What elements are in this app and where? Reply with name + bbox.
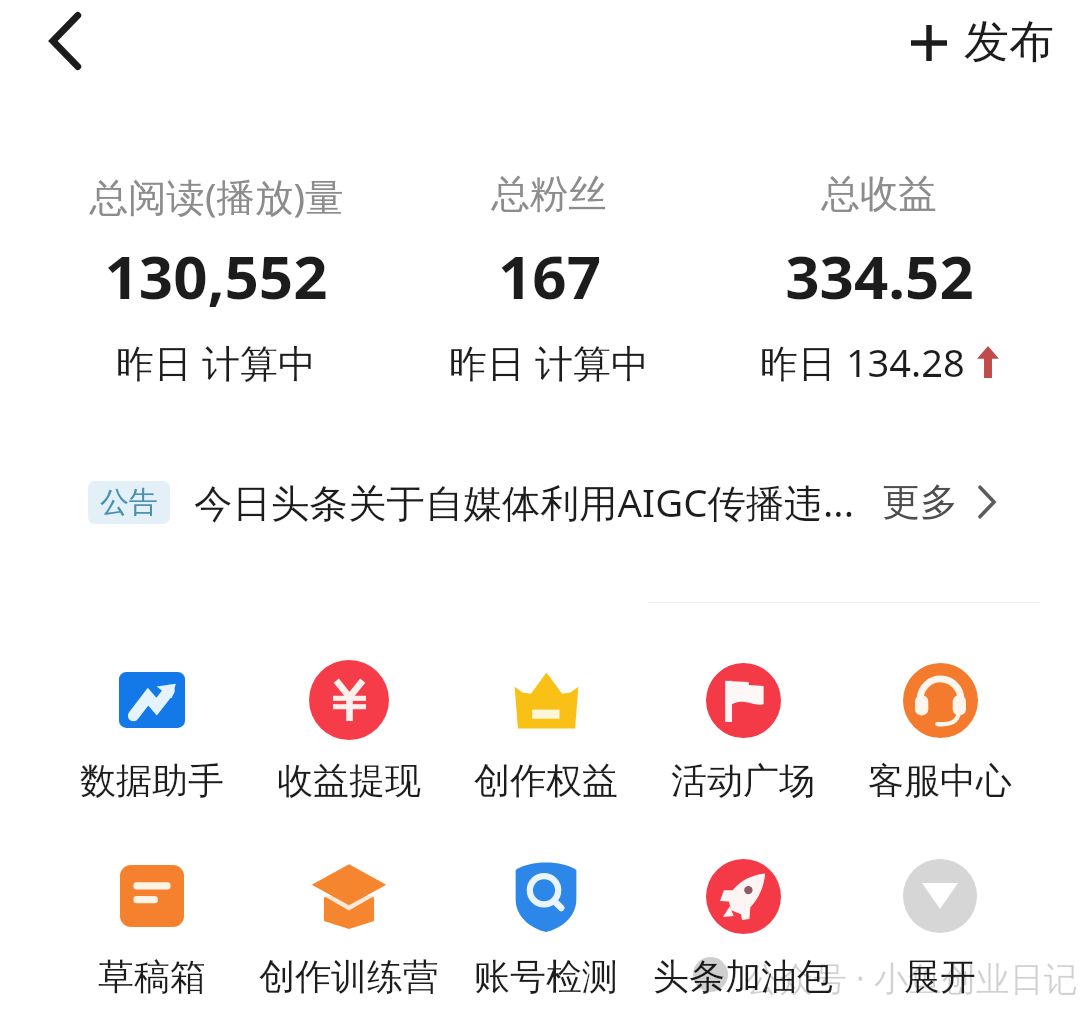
staticText: 昨日 134.28 <box>760 336 965 388</box>
staticText: 草稿箱 <box>98 954 206 999</box>
staticText: 创作权益 <box>474 758 618 803</box>
staticText: 今日头条关于自媒体利用AIGC传播违... <box>194 476 856 529</box>
button[interactable]: 发布 <box>910 14 1054 71</box>
staticText: 头条加油包 <box>653 954 833 999</box>
staticText: 更多 <box>882 478 958 526</box>
staticText: 167 <box>498 235 601 317</box>
staticText: 总收益 <box>821 170 937 219</box>
staticText: 334.52 <box>785 235 974 317</box>
staticText: 公告 <box>100 484 158 521</box>
button[interactable]: 草稿箱 <box>53 853 250 999</box>
staticText: 总粉丝 <box>491 170 607 219</box>
staticText: 活动广场 <box>671 758 815 803</box>
staticText: 昨日 计算中 <box>449 336 649 388</box>
button[interactable]: 展开 <box>841 853 1038 999</box>
button[interactable]: 活动广场 <box>644 657 841 803</box>
button[interactable]: 总粉丝 <box>374 150 724 400</box>
button[interactable]: 账号检测 <box>447 853 644 999</box>
button[interactable]: 客服中心 <box>841 657 1038 803</box>
button[interactable]: 公告 <box>88 470 998 534</box>
staticText: 展开 <box>904 954 976 999</box>
button[interactable]: 创作训练营 <box>250 853 447 999</box>
staticText: 130,552 <box>104 235 328 317</box>
staticText: 发布 <box>964 14 1054 71</box>
staticText: 账号检测 <box>474 954 618 999</box>
button[interactable]: 数据助手 <box>53 657 250 803</box>
button[interactable]: 收益提现 <box>250 657 447 803</box>
staticText: 昨日 计算中 <box>116 336 316 388</box>
staticText: 数据助手 <box>80 758 224 803</box>
button[interactable]: 创作权益 <box>447 657 644 803</box>
button[interactable]: Back <box>24 0 106 82</box>
button[interactable]: 总收益 <box>704 150 1054 400</box>
button[interactable]: 总阅读(播放)量 <box>41 150 391 400</box>
staticText: 公众号 · 小鱼创业日记 <box>745 955 1078 1001</box>
staticText: 收益提现 <box>277 758 421 803</box>
staticText: 客服中心 <box>868 758 1012 803</box>
button[interactable]: 头条加油包 <box>644 853 841 999</box>
staticText: 总阅读(播放)量 <box>89 170 344 223</box>
staticText: 创作训练营 <box>259 954 439 999</box>
